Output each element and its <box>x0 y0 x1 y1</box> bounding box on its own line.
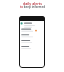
button[interactable] <box>19 16 45 68</box>
staticText: daily alerts <box>23 1 42 6</box>
staticText: to keep informed <box>20 5 45 9</box>
